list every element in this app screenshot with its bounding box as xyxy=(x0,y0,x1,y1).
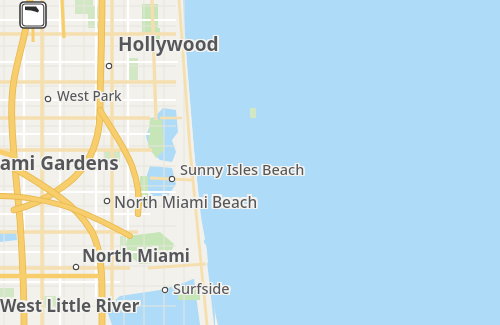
button[interactable]: Map of Miami area xyxy=(0,0,500,325)
